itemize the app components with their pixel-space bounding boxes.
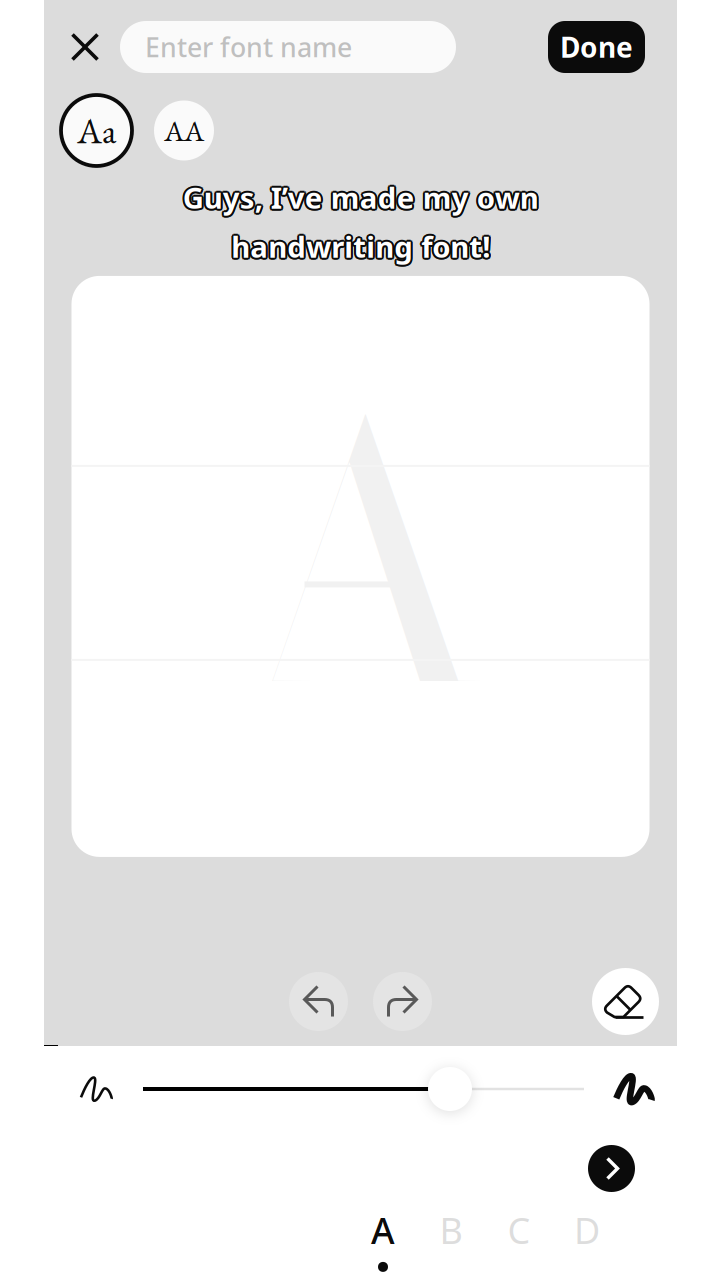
staticText: Guys, I’ve made my own handwriting font! xyxy=(181,179,537,267)
button[interactable]: D xyxy=(553,1210,621,1268)
staticText: Guys, I’ve made my own handwriting font! xyxy=(182,180,538,268)
staticText: Aa xyxy=(77,107,116,154)
staticText: Guys, I’ve made my own handwriting font! xyxy=(182,178,538,266)
button[interactable]: A xyxy=(349,1210,417,1268)
button[interactable]: Enter font name xyxy=(120,21,456,73)
staticText: A xyxy=(232,288,489,821)
button[interactable]: Done xyxy=(548,21,645,73)
button[interactable]: Redo xyxy=(373,972,432,1031)
staticText: C xyxy=(507,1206,530,1254)
staticText: Guys, I’ve made my own handwriting font! xyxy=(180,178,536,266)
staticText: Enter font name xyxy=(145,29,352,65)
button[interactable]: B xyxy=(417,1210,485,1268)
button[interactable]: Close xyxy=(62,24,108,70)
staticText: Guys, I’ve made my own handwriting font! xyxy=(184,178,540,266)
button[interactable]: Eraser xyxy=(592,968,659,1035)
button[interactable]: Aa xyxy=(61,95,132,166)
staticText: AA xyxy=(164,111,204,150)
button[interactable]: C xyxy=(485,1210,553,1268)
staticText: D xyxy=(574,1206,600,1254)
staticText: Guys, I’ve made my own handwriting font! xyxy=(184,177,540,264)
staticText: A xyxy=(371,1206,395,1254)
staticText: Guys, I’ve made my own handwriting font! xyxy=(181,177,537,264)
staticText: Guys, I’ve made my own handwriting font! xyxy=(184,179,540,267)
button[interactable]: AA xyxy=(154,100,214,160)
staticText: B xyxy=(439,1206,462,1254)
button[interactable]: Next letter xyxy=(588,1145,635,1192)
button[interactable]: Undo xyxy=(289,972,348,1031)
staticText: Guys, I’ve made my own handwriting font! xyxy=(182,176,538,264)
staticText: Done xyxy=(560,28,633,66)
